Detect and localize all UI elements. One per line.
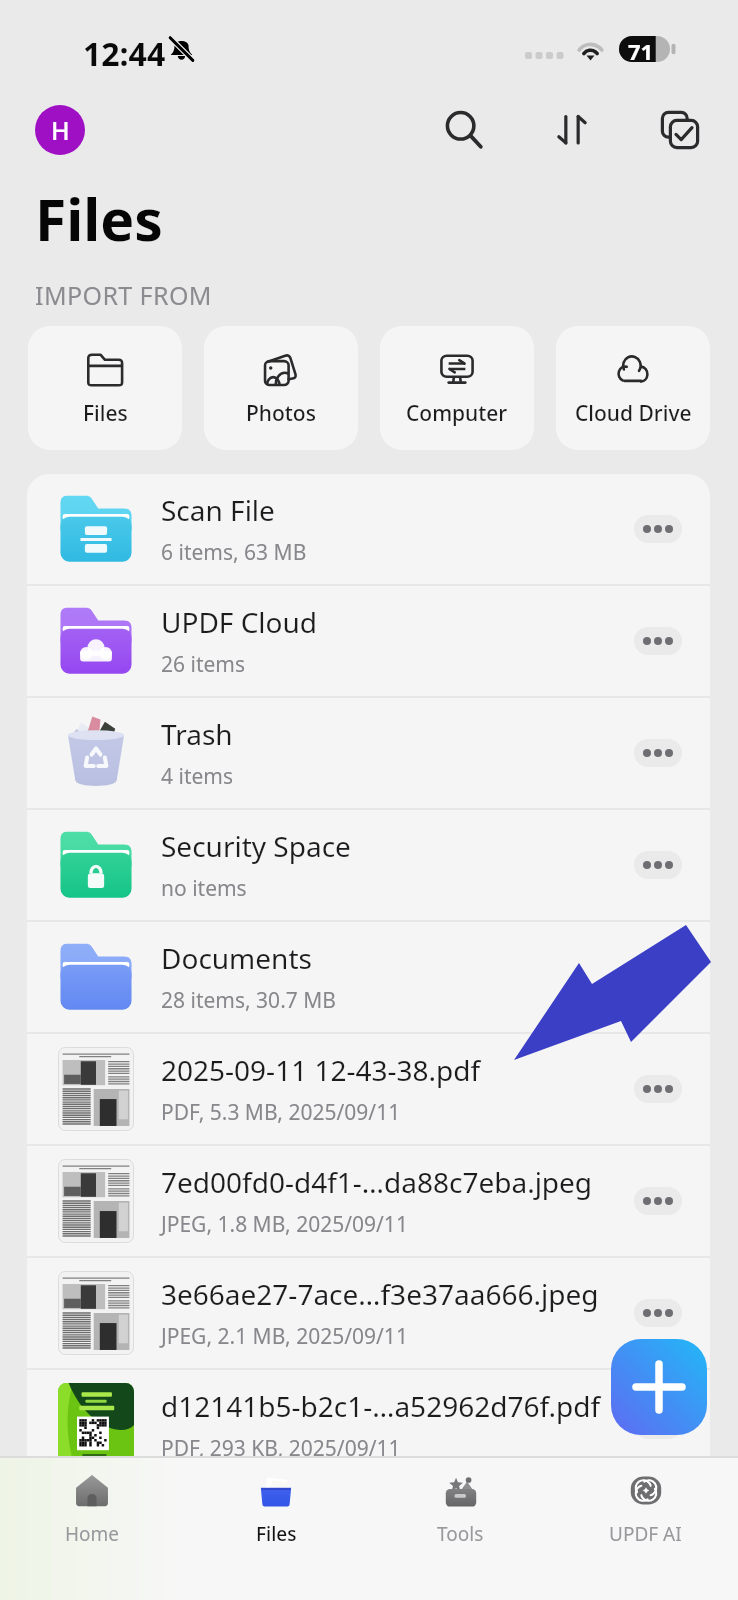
- button[interactable]: Cloud Drive: [556, 326, 710, 450]
- staticText: UPDF AI: [609, 1521, 682, 1547]
- button[interactable]: Computer: [380, 326, 534, 450]
- button[interactable]: UPDF Cloud: [27, 586, 710, 696]
- staticText: Computer: [406, 399, 508, 428]
- staticText: Scan File: [161, 491, 275, 529]
- button[interactable]: More options: [634, 627, 682, 655]
- staticText: 71: [628, 36, 654, 62]
- staticText: Security Space: [161, 827, 351, 865]
- staticText: Cloud Drive: [575, 399, 692, 428]
- button[interactable]: More options: [634, 1411, 682, 1439]
- button[interactable]: Files: [28, 326, 182, 450]
- button[interactable]: Sort: [540, 98, 604, 162]
- staticText: UPDF Cloud: [161, 603, 318, 641]
- button[interactable]: Security Space: [27, 810, 710, 920]
- button[interactable]: d12141b5-b2c1-…a52962d76f.pdf: [27, 1370, 710, 1480]
- staticText: 2025-09-11 12-43-38.pdf: [161, 1051, 481, 1089]
- staticText: 3e66ae27-7ace…f3e37aa666.jpeg: [161, 1275, 599, 1313]
- button[interactable]: More options: [634, 1187, 682, 1215]
- staticText: Trash: [161, 715, 233, 753]
- staticText: no items: [161, 874, 247, 903]
- button[interactable]: Add file: [611, 1339, 707, 1435]
- button[interactable]: Trash: [27, 698, 710, 808]
- staticText: Files: [35, 180, 163, 258]
- staticText: Photos: [246, 399, 316, 428]
- staticText: Documents: [161, 939, 312, 977]
- button[interactable]: More options: [634, 515, 682, 543]
- staticText: 26 items: [161, 650, 246, 679]
- staticText: IMPORT FROM: [35, 278, 212, 312]
- staticText: H: [51, 113, 70, 147]
- staticText: 6 items, 63 MB: [161, 538, 307, 567]
- button[interactable]: Tools: [368, 1458, 553, 1600]
- staticText: PDF, 293 KB, 2025/09/11: [161, 1434, 401, 1463]
- button[interactable]: Scan File: [27, 474, 710, 584]
- staticText: Home: [65, 1521, 120, 1547]
- staticText: JPEG, 2.1 MB, 2025/09/11: [161, 1322, 408, 1351]
- button[interactable]: Home: [0, 1458, 184, 1600]
- button[interactable]: Select: [648, 98, 712, 162]
- staticText: 4 items: [161, 762, 234, 791]
- staticText: JPEG, 1.8 MB, 2025/09/11: [161, 1210, 408, 1239]
- button[interactable]: 7ed00fd0-d4f1-…da88c7eba.jpeg: [27, 1146, 710, 1256]
- button[interactable]: More options: [634, 1299, 682, 1327]
- staticText: 28 items, 30.7 MB: [161, 986, 336, 1015]
- button[interactable]: Photos: [204, 326, 358, 450]
- button[interactable]: More options: [634, 739, 682, 767]
- staticText: 12:44: [83, 32, 166, 76]
- staticText: d12141b5-b2c1-…a52962d76f.pdf: [161, 1387, 601, 1425]
- button[interactable]: Files: [184, 1458, 368, 1600]
- button[interactable]: More options: [634, 1075, 682, 1103]
- button[interactable]: More options: [634, 851, 682, 879]
- staticText: Files: [256, 1521, 297, 1547]
- button[interactable]: 2025-09-11 12-43-38.pdf: [27, 1034, 710, 1144]
- staticText: Tools: [437, 1521, 484, 1547]
- button[interactable]: 3e66ae27-7ace…f3e37aa666.jpeg: [27, 1258, 710, 1368]
- staticText: 7ed00fd0-d4f1-…da88c7eba.jpeg: [161, 1163, 593, 1201]
- button[interactable]: Search: [432, 98, 496, 162]
- button[interactable]: Profile: [35, 105, 85, 155]
- staticText: Files: [83, 399, 128, 428]
- button[interactable]: Documents: [27, 922, 710, 1032]
- staticText: PDF, 5.3 MB, 2025/09/11: [161, 1098, 401, 1127]
- button[interactable]: UPDF AI: [553, 1458, 738, 1600]
